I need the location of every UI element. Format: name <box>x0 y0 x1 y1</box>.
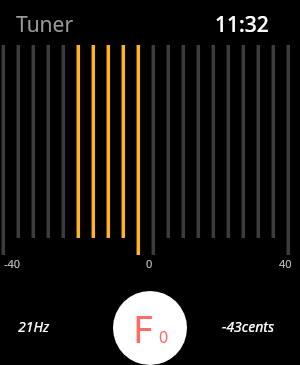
staticText: 0 <box>146 256 153 271</box>
staticText: -43cents <box>222 317 274 336</box>
button[interactable]: Tuning meter <box>0 45 300 265</box>
button[interactable]: Detected note F <box>113 291 187 365</box>
staticText: -40 <box>4 256 21 271</box>
staticText: Tuner <box>16 10 74 39</box>
staticText: 40 <box>279 256 292 271</box>
staticText: F <box>133 302 153 354</box>
staticText: 0 <box>159 326 169 348</box>
staticText: 21Hz <box>18 317 50 336</box>
staticText: 11:32 <box>215 10 269 39</box>
